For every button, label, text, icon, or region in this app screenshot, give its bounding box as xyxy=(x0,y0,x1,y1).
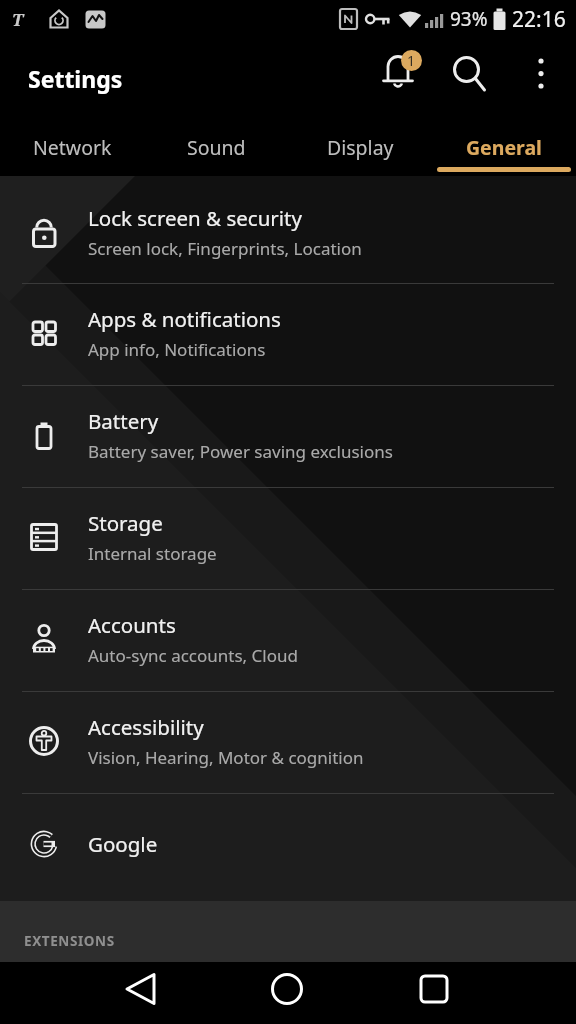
button[interactable]: Storage xyxy=(0,488,576,589)
staticText: App info, Notifications xyxy=(88,338,266,361)
staticText: Battery xyxy=(88,407,159,435)
staticText: Display xyxy=(327,134,394,161)
button[interactable]: Apps & notifications xyxy=(0,284,576,385)
button[interactable] xyxy=(192,962,384,1024)
staticText: Apps & notifications xyxy=(88,305,281,333)
staticText: Screen lock, Fingerprints, Location xyxy=(88,237,362,260)
staticText: Storage xyxy=(88,509,163,537)
staticText: Network xyxy=(33,134,112,161)
button[interactable] xyxy=(454,54,494,94)
staticText: Accounts xyxy=(88,611,176,639)
button[interactable]: Display xyxy=(288,118,432,176)
staticText: Google xyxy=(88,830,158,858)
staticText: 93% xyxy=(450,6,488,32)
button[interactable]: Google xyxy=(0,794,576,895)
button[interactable]: Accessibility xyxy=(0,692,576,793)
staticText: Settings xyxy=(28,63,123,94)
staticText: EXTENSIONS xyxy=(24,932,115,950)
staticText: Internal storage xyxy=(88,542,217,565)
staticText: Lock screen & security xyxy=(88,204,302,232)
button[interactable] xyxy=(528,51,554,97)
staticText: Accessibility xyxy=(88,713,204,741)
button[interactable]: Accounts xyxy=(0,590,576,691)
button[interactable]: General xyxy=(432,118,576,176)
button[interactable]: Battery xyxy=(0,386,576,487)
button[interactable] xyxy=(0,962,192,1024)
staticText: General xyxy=(466,134,542,161)
staticText: Sound xyxy=(187,134,246,161)
button[interactable]: Lock screen & security xyxy=(0,176,576,283)
staticText: 1 xyxy=(407,51,416,70)
button[interactable]: Sound xyxy=(144,118,288,176)
staticText: Vision, Hearing, Motor & cognition xyxy=(88,746,364,769)
staticText: Battery saver, Power saving exclusions xyxy=(88,440,393,463)
button[interactable]: 1 xyxy=(374,51,420,97)
staticText: T xyxy=(12,8,24,31)
button[interactable]: Network xyxy=(0,118,144,176)
staticText: 22:16 xyxy=(512,5,566,34)
staticText: Auto-sync accounts, Cloud xyxy=(88,644,298,667)
button[interactable] xyxy=(384,962,576,1024)
